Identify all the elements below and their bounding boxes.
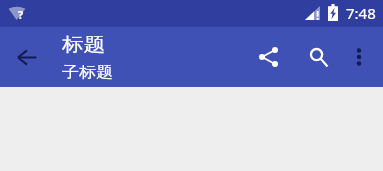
button[interactable]: Search bbox=[296, 34, 342, 82]
button[interactable]: Share bbox=[244, 33, 292, 81]
staticText: 7:48 bbox=[346, 3, 376, 23]
staticText: 子标题 bbox=[62, 63, 113, 82]
staticText: 标题 bbox=[62, 33, 105, 57]
staticText: ? bbox=[18, 7, 24, 22]
button[interactable]: More options bbox=[340, 33, 378, 81]
button[interactable]: Navigate up bbox=[4, 33, 50, 81]
